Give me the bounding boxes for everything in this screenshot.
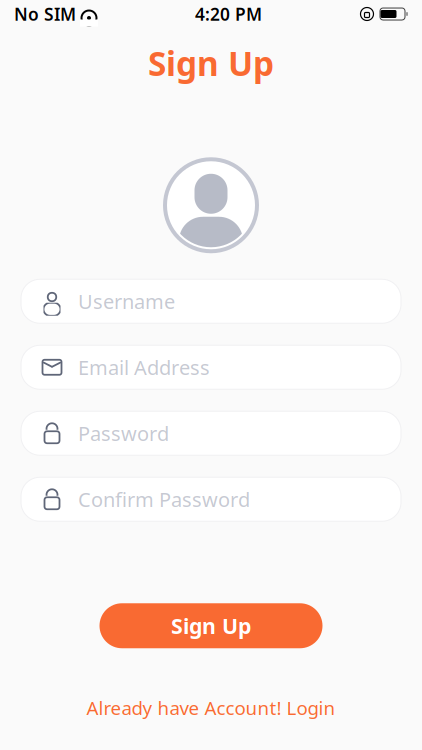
staticText: Already have Account! Login: [86, 695, 335, 720]
staticText: Sign Up: [171, 612, 251, 640]
staticText: 4:20 PM: [195, 2, 262, 25]
staticText: Sign Up: [148, 41, 274, 85]
staticText: No SIM: [14, 2, 76, 25]
staticText: Email Address: [78, 354, 210, 381]
button[interactable]: Confirm Password: [21, 477, 401, 521]
button[interactable]: Sign Up: [99, 603, 322, 648]
button[interactable]: Password: [21, 411, 401, 455]
staticText: Username: [78, 288, 175, 315]
staticText: Confirm Password: [78, 486, 250, 513]
button[interactable]: Email Address: [21, 345, 401, 389]
staticText: Password: [78, 420, 169, 447]
button[interactable]: Username: [21, 279, 401, 323]
button[interactable]: Already have Account! Login: [74, 689, 347, 726]
